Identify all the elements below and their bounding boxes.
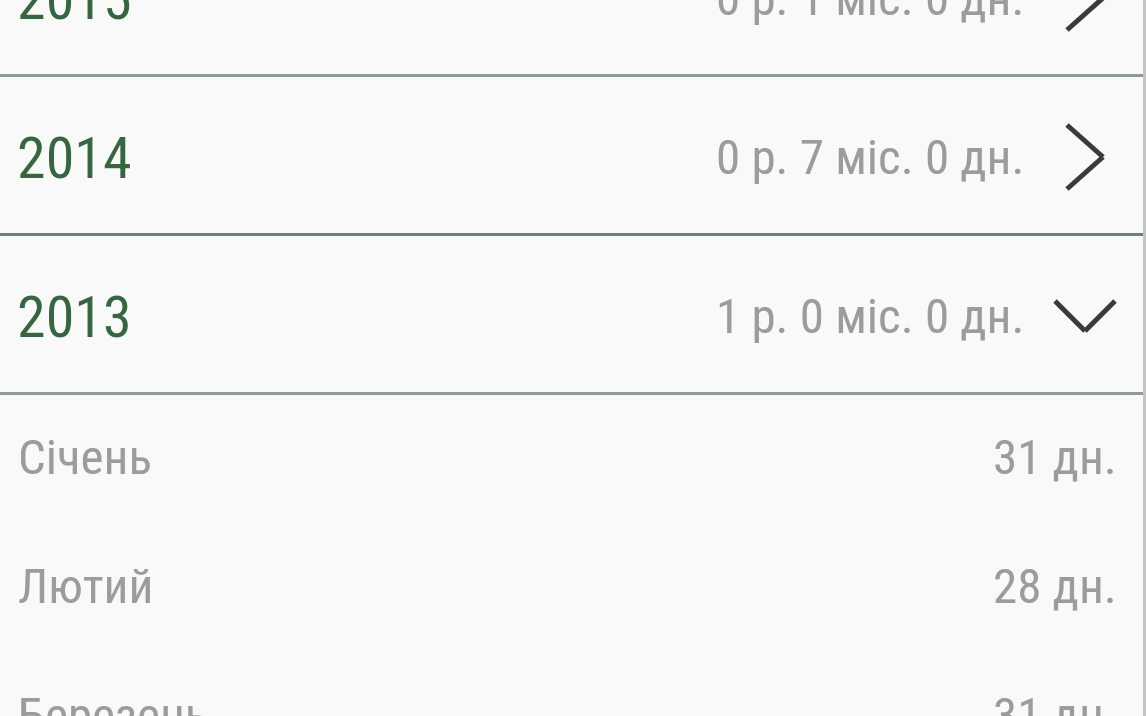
staticText: 1 р. 0 міс. 0 дн. [716, 288, 1025, 345]
staticText: 31 дн. [993, 429, 1117, 486]
staticText: 31 дн. [993, 687, 1117, 716]
other: Collapse year [1052, 280, 1118, 352]
button[interactable]: Березень [0, 651, 1146, 716]
staticText: 0 р. 7 міс. 0 дн. [716, 129, 1025, 186]
staticText: Березень [18, 687, 209, 716]
button[interactable]: 2013 [0, 237, 1146, 396]
other: Expand year [1052, 121, 1118, 193]
button[interactable]: 2014 [0, 78, 1146, 237]
staticText: 2014 [17, 124, 132, 192]
button[interactable]: Лютий [0, 522, 1146, 651]
staticText: Січень [18, 429, 152, 486]
other: Expand year [1052, 0, 1118, 34]
staticText: Лютий [18, 558, 154, 615]
button[interactable]: 2015 [0, 0, 1146, 78]
staticText: 0 р. 1 міс. 0 дн. [716, 0, 1025, 27]
staticText: 2015 [17, 0, 132, 33]
staticText: 28 дн. [993, 558, 1117, 615]
button[interactable]: Січень [0, 393, 1146, 522]
staticText: 2013 [17, 283, 132, 351]
